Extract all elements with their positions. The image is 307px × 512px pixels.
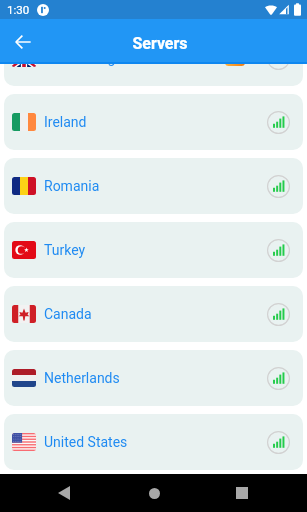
button[interactable]: Ireland [4, 94, 303, 150]
staticText: Romania [44, 178, 100, 194]
button[interactable]: Netherlands [4, 350, 303, 406]
button[interactable]: United Kingdom [4, 64, 303, 86]
button[interactable]: Recent apps [226, 477, 258, 509]
button[interactable]: Canada [4, 286, 303, 342]
staticText: Servers [132, 34, 188, 53]
staticText: Netherlands [44, 370, 120, 386]
staticText: United Kingdom [44, 64, 144, 66]
button[interactable]: Back [9, 28, 36, 55]
staticText: Canada [44, 306, 92, 322]
button[interactable]: Turkey [4, 222, 303, 278]
button[interactable]: Home [138, 477, 170, 509]
staticText: Ireland [44, 114, 87, 130]
staticText: Turkey [44, 242, 86, 258]
button[interactable]: Romania [4, 158, 303, 214]
button[interactable]: Back [48, 477, 80, 509]
button[interactable]: United States [4, 414, 303, 470]
staticText: United States [44, 434, 128, 450]
staticText: 1:30 [7, 3, 30, 16]
